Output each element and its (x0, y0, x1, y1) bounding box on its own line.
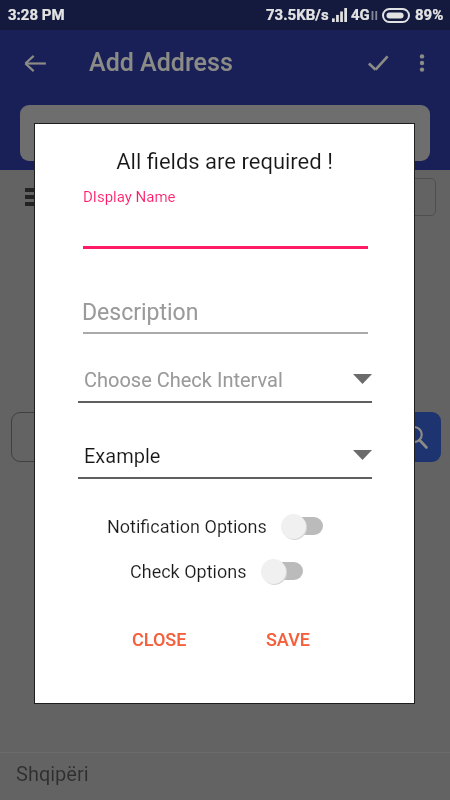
button[interactable]: Shqipëri (0, 752, 450, 800)
staticText: 73.5KB/s (266, 6, 329, 24)
button[interactable]: Filter (406, 178, 436, 216)
button[interactable]: More options (400, 41, 444, 85)
staticText: Check Options (130, 561, 247, 582)
staticText: 4G (351, 6, 370, 24)
button[interactable]: Done (356, 41, 400, 85)
staticText: SAVE (266, 629, 311, 650)
button[interactable]: Notification Options (281, 512, 323, 540)
staticText: Shqipëri (16, 762, 89, 785)
staticText: DIsplay Name (83, 188, 176, 206)
button[interactable]: Search (391, 412, 441, 462)
staticText: All fields are required ! (34, 149, 415, 175)
button[interactable]: Choose Check Interval (78, 368, 372, 403)
button[interactable]: Check Options (261, 557, 303, 585)
staticText: CLOSE (132, 629, 187, 650)
button[interactable]: SAVE (252, 621, 325, 658)
button[interactable]: CLOSE (118, 621, 201, 658)
staticText: 3:28 PM (8, 6, 65, 24)
button[interactable]: Options (11, 412, 57, 462)
staticText: 89% (415, 6, 444, 24)
staticText: Example (84, 444, 161, 467)
staticText: Choose Check Interval (84, 368, 283, 391)
staticText: Notification Options (107, 516, 267, 537)
button[interactable]: Example (78, 444, 372, 479)
staticText: Description (82, 299, 199, 326)
button[interactable]: Address field (20, 105, 430, 161)
staticText: Add Address (89, 48, 233, 77)
button[interactable]: Menu (19, 180, 53, 214)
button[interactable]: Back (14, 42, 56, 84)
